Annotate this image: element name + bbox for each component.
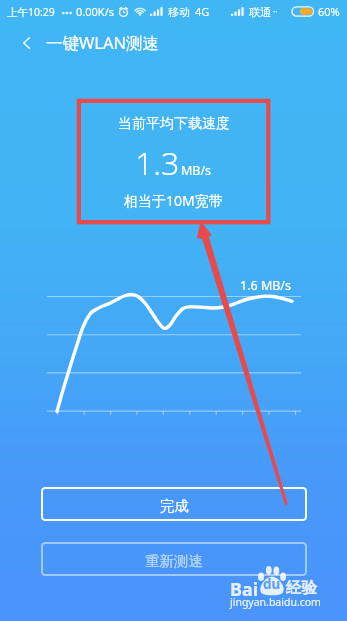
staticText: du <box>263 575 281 593</box>
staticText: Bai <box>230 577 259 602</box>
staticText: 60% <box>318 4 340 19</box>
staticText: 1.6 MB/s <box>240 277 292 294</box>
staticText: 当前平均下载速度 <box>118 115 230 133</box>
staticText: 移动 <box>168 5 190 19</box>
staticText: 相当于10M宽带 <box>124 191 223 210</box>
staticText: 完成 <box>160 497 189 515</box>
staticText: 重新测速 <box>145 552 203 570</box>
staticText: MB/s <box>181 162 212 179</box>
staticText: 联通 <box>249 5 271 19</box>
staticText: 经验 <box>286 578 317 598</box>
button[interactable]: 完成 <box>41 487 307 521</box>
staticText: 1.3 <box>135 141 180 185</box>
staticText: ·· <box>273 6 278 17</box>
staticText: 一键WLAN测速 <box>46 31 160 54</box>
staticText: 上午10:29 <box>7 5 55 19</box>
staticText: jingyan.baidu.com <box>230 595 321 609</box>
staticText: 0.00K/s <box>76 4 114 19</box>
button[interactable]: 重新测速 <box>41 542 307 576</box>
button[interactable]: Back <box>17 33 37 53</box>
staticText: 4G <box>195 4 210 19</box>
